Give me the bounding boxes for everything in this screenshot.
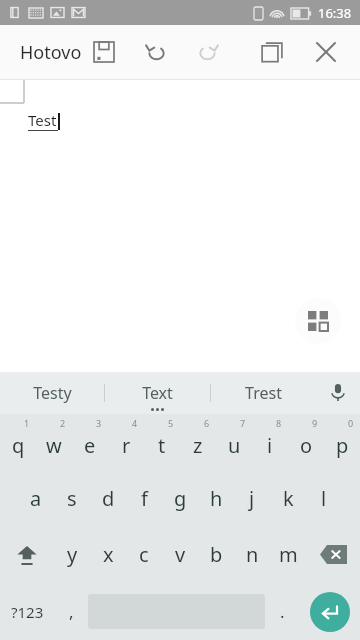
button[interactable]: a xyxy=(18,470,54,526)
staticText: r xyxy=(122,432,131,459)
button[interactable]: Enter xyxy=(299,583,360,640)
staticText: 2 xyxy=(60,417,66,429)
staticText: 3 xyxy=(96,417,102,429)
staticText: s xyxy=(67,485,77,512)
staticText: y xyxy=(67,541,78,568)
staticText: f xyxy=(141,485,148,512)
button[interactable]: n xyxy=(234,526,270,583)
button[interactable]: j xyxy=(234,470,270,526)
staticText: Text xyxy=(142,382,173,404)
staticText: 1 xyxy=(24,417,30,429)
button[interactable]: 2 xyxy=(36,414,72,470)
staticText: x xyxy=(103,541,114,568)
button[interactable]: Save xyxy=(84,32,124,72)
staticText: m xyxy=(279,541,298,568)
staticText: 4 xyxy=(132,417,138,429)
button[interactable]: Trest xyxy=(211,372,316,414)
button[interactable]: Tools xyxy=(295,298,341,344)
staticText: g xyxy=(174,485,187,512)
staticText: Test xyxy=(28,110,57,130)
staticText: 5 xyxy=(168,417,174,429)
button[interactable]: Close xyxy=(306,32,346,72)
button[interactable]: l xyxy=(306,470,342,526)
staticText: 0 xyxy=(348,417,354,429)
staticText: z xyxy=(193,432,203,459)
staticText: b xyxy=(210,541,223,568)
staticText: i xyxy=(267,432,273,459)
button[interactable]: g xyxy=(162,470,198,526)
button[interactable]: 6 xyxy=(180,414,216,470)
staticText: 6 xyxy=(204,417,210,429)
button[interactable]: v xyxy=(162,526,198,583)
button[interactable]: k xyxy=(270,470,306,526)
staticText: 7 xyxy=(240,417,246,429)
button[interactable]: 0 xyxy=(324,414,360,470)
staticText: q xyxy=(12,432,25,459)
button[interactable]: h xyxy=(198,470,234,526)
staticText: h xyxy=(210,485,223,512)
button[interactable]: Redo xyxy=(188,32,228,72)
button[interactable]: , xyxy=(54,583,88,640)
button[interactable]: Text xyxy=(105,372,210,414)
staticText: w xyxy=(46,432,62,459)
button[interactable]: Testy xyxy=(0,372,104,414)
staticText: p xyxy=(336,432,349,459)
button[interactable]: 5 xyxy=(144,414,180,470)
button[interactable]: Backspace xyxy=(306,526,360,583)
button[interactable]: Undo xyxy=(136,32,176,72)
staticText: d xyxy=(102,485,115,512)
staticText: . xyxy=(280,600,285,623)
button[interactable]: ?123 xyxy=(0,583,54,640)
staticText: t xyxy=(158,432,166,459)
button[interactable]: b xyxy=(198,526,234,583)
button[interactable]: 9 xyxy=(288,414,324,470)
staticText: Trest xyxy=(245,382,282,404)
staticText: l xyxy=(321,485,327,512)
staticText: Testy xyxy=(33,382,72,404)
staticText: ?123 xyxy=(11,602,44,622)
button[interactable]: Voice input xyxy=(316,372,360,414)
staticText: a xyxy=(30,485,42,512)
button[interactable]: Shift xyxy=(0,526,54,583)
button[interactable]: Hotovo xyxy=(20,40,82,65)
staticText: 16:38 xyxy=(318,4,352,22)
staticText: v xyxy=(175,541,186,568)
button[interactable]: c xyxy=(126,526,162,583)
staticText: j xyxy=(249,485,255,512)
button[interactable]: 8 xyxy=(252,414,288,470)
button[interactable]: 3 xyxy=(72,414,108,470)
staticText: e xyxy=(84,432,96,459)
button[interactable]: m xyxy=(270,526,306,583)
button[interactable]: x xyxy=(90,526,126,583)
staticText: c xyxy=(139,541,149,568)
button[interactable]: 4 xyxy=(108,414,144,470)
button[interactable]: . xyxy=(265,583,299,640)
button[interactable]: 7 xyxy=(216,414,252,470)
button[interactable]: d xyxy=(90,470,126,526)
staticText: 8 xyxy=(276,417,282,429)
staticText: k xyxy=(283,485,294,512)
staticText: 9 xyxy=(312,417,318,429)
staticText: u xyxy=(228,432,241,459)
button[interactable]: y xyxy=(54,526,90,583)
button[interactable]: s xyxy=(54,470,90,526)
button[interactable]: f xyxy=(126,470,162,526)
staticText: o xyxy=(300,432,313,459)
staticText: , xyxy=(69,600,74,623)
button[interactable]: 1 xyxy=(0,414,36,470)
staticText: n xyxy=(246,541,259,568)
button[interactable]: Pages xyxy=(252,32,292,72)
